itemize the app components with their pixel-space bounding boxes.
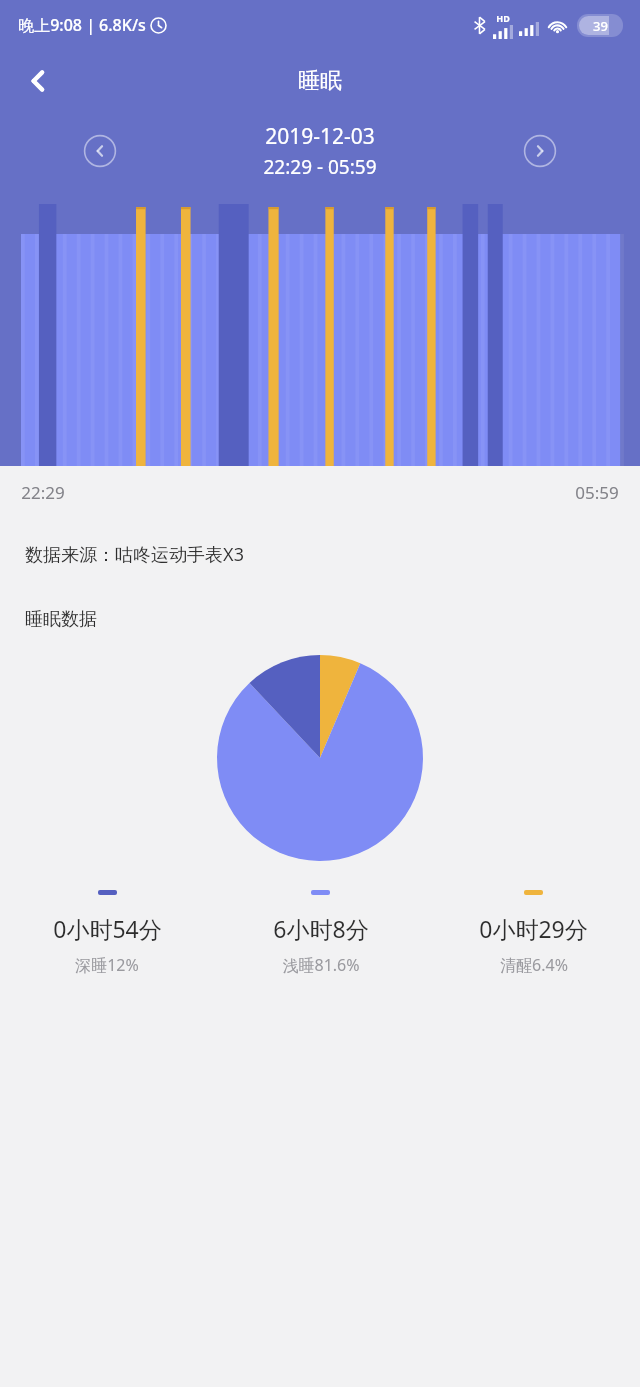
staticText: 数据来源：咕咚运动手表X3 — [25, 542, 244, 567]
staticText: 22:29 - 05:59 — [263, 154, 377, 180]
staticText: 晚上9:08 | 6.8K/s — [18, 14, 146, 36]
staticText: 清醒6.4% — [500, 954, 568, 976]
staticText: 睡眠 — [298, 67, 342, 95]
button[interactable]: Previous day — [82, 133, 118, 169]
staticText: 深睡12% — [75, 954, 139, 976]
button[interactable]: Back — [10, 53, 66, 109]
button[interactable]: 6小时8分 — [214, 890, 427, 976]
button[interactable]: 0小时29分 — [427, 890, 640, 976]
staticText: 睡眠数据 — [25, 608, 97, 631]
staticText: HD — [496, 12, 510, 24]
button[interactable]: Next day — [522, 133, 558, 169]
staticText: 22:29 — [21, 481, 65, 504]
button[interactable]: 0小时54分 — [0, 890, 214, 976]
staticText: 浅睡81.6% — [282, 954, 360, 976]
staticText: 0小时54分 — [53, 913, 162, 944]
staticText: 05:59 — [575, 481, 619, 504]
staticText: 0小时29分 — [479, 913, 588, 944]
staticText: 2019-12-03 — [265, 122, 375, 151]
staticText: 6小时8分 — [273, 913, 369, 944]
staticText: 39 — [593, 17, 608, 35]
